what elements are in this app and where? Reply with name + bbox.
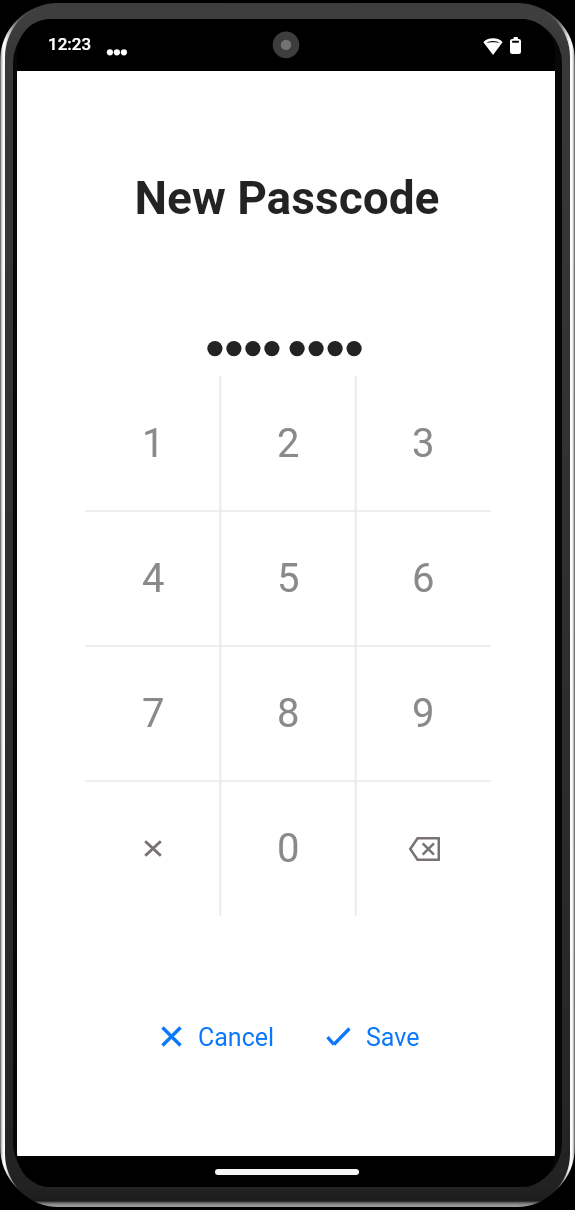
- button[interactable]: 8: [221, 646, 356, 781]
- staticText: 5: [277, 555, 300, 602]
- button[interactable]: 9: [356, 646, 491, 781]
- other: Backspace: [408, 837, 440, 861]
- staticText: 6: [412, 555, 435, 602]
- button[interactable]: 5: [221, 511, 356, 646]
- button[interactable]: 1: [85, 376, 221, 511]
- staticText: 0: [277, 825, 300, 872]
- staticText: Save: [366, 1023, 420, 1052]
- button[interactable]: Cancel: [152, 1013, 284, 1060]
- staticText: Cancel: [198, 1023, 275, 1052]
- button[interactable]: Save: [317, 1013, 430, 1060]
- button[interactable]: Clear: [85, 781, 221, 916]
- button[interactable]: 0: [221, 781, 356, 916]
- staticText: 4: [142, 555, 165, 602]
- staticText: 8: [277, 690, 300, 737]
- staticText: 7: [142, 690, 165, 737]
- button[interactable]: 4: [85, 511, 221, 646]
- button[interactable]: 2: [221, 376, 356, 511]
- button[interactable]: 3: [356, 376, 491, 511]
- button[interactable]: 7: [85, 646, 221, 781]
- staticText: 9: [412, 690, 435, 737]
- button[interactable]: 6: [356, 511, 491, 646]
- button[interactable]: Backspace: [356, 781, 491, 916]
- staticText: 1: [142, 420, 165, 467]
- staticText: New Passcode: [18, 171, 555, 225]
- other: Clear: [144, 840, 162, 857]
- staticText: 3: [412, 420, 435, 467]
- staticText: 2: [277, 420, 300, 467]
- staticText: 12:23: [48, 34, 92, 54]
